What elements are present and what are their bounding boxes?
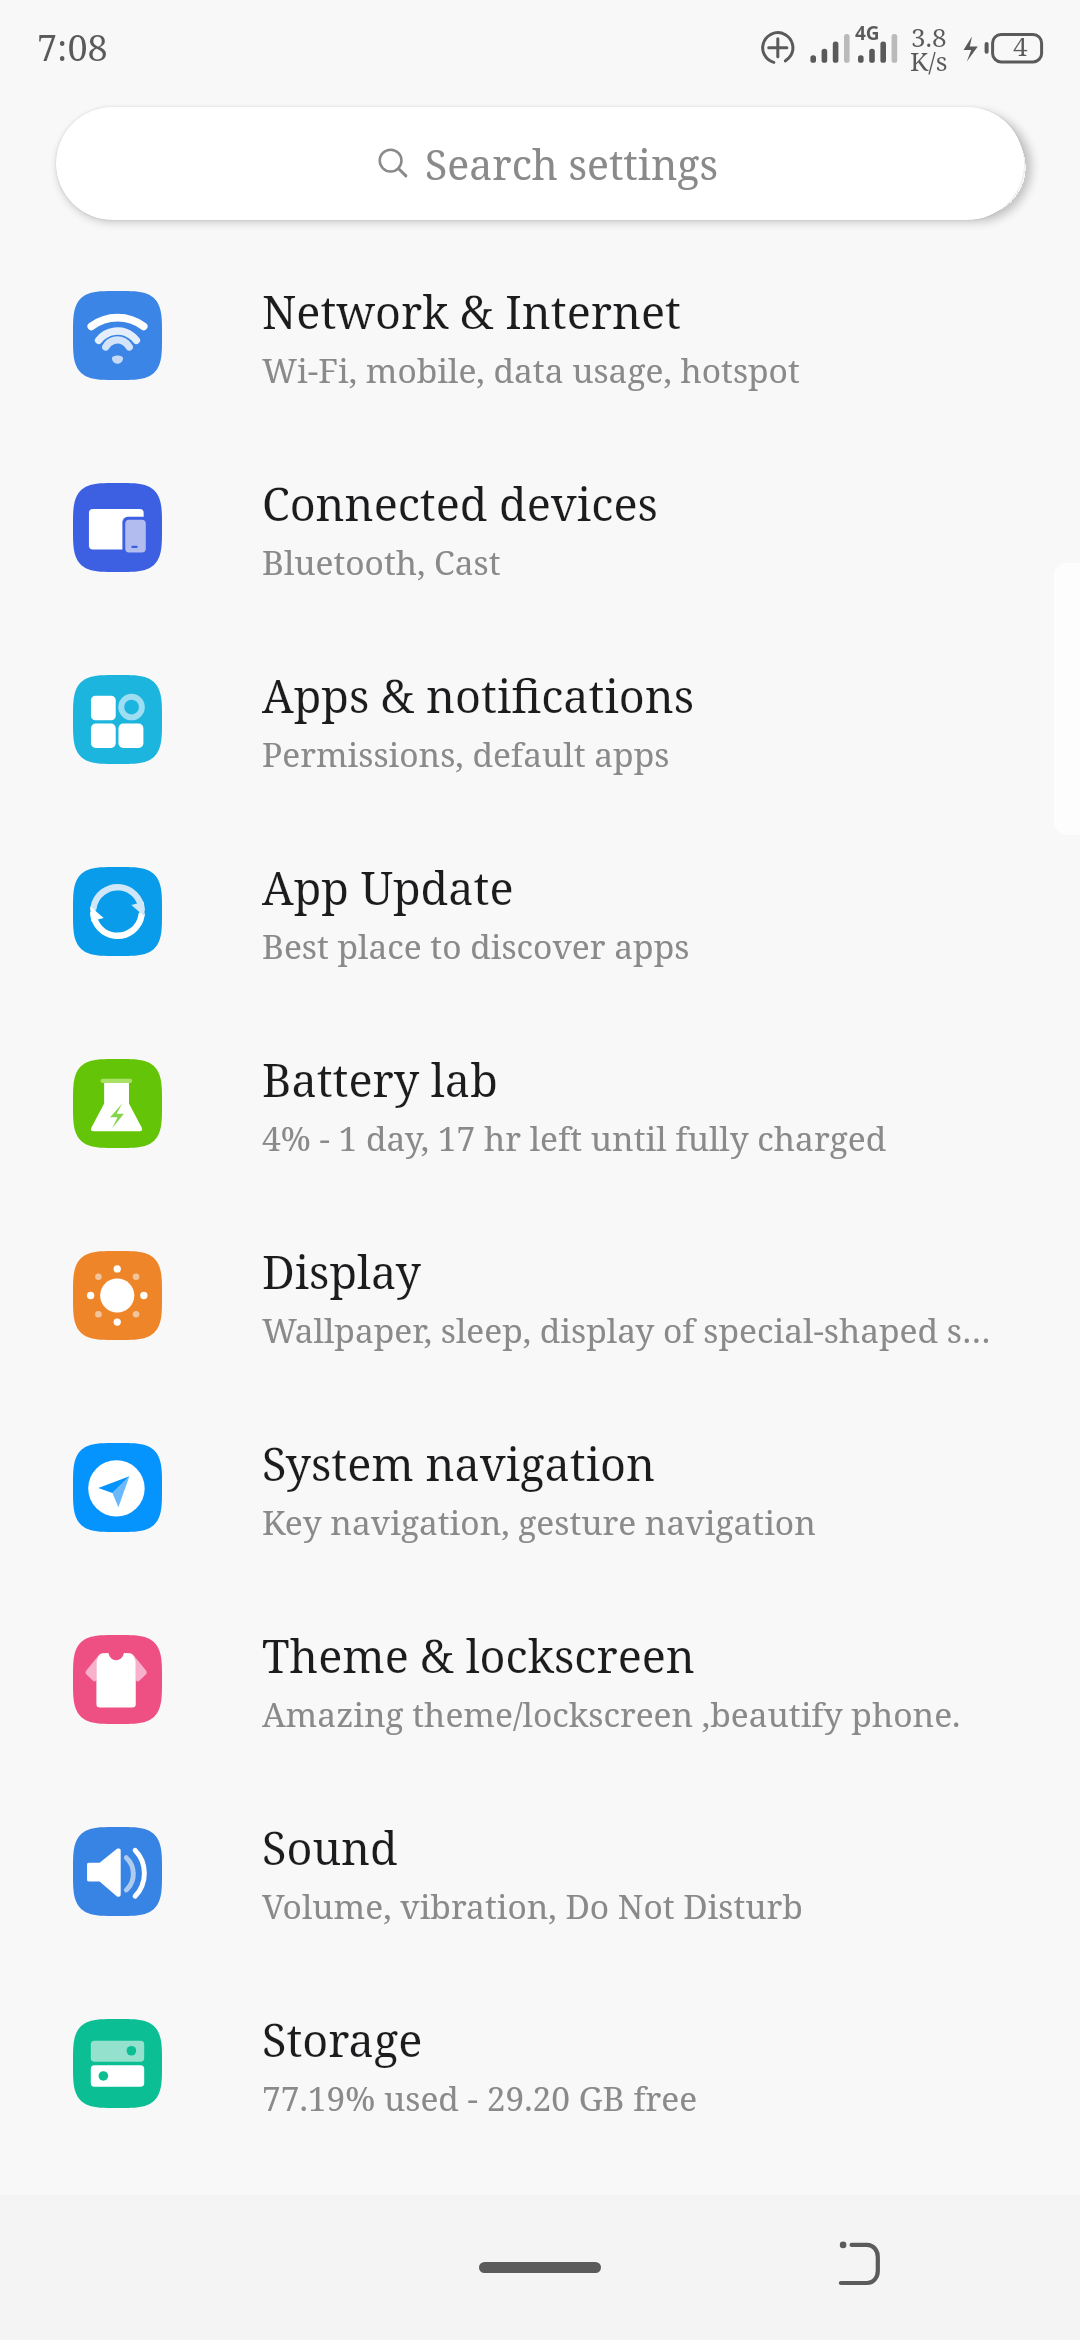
button[interactable]: Sound bbox=[0, 1775, 1080, 1967]
staticText: 4% - 1 day, 17 hr left until fully charg… bbox=[262, 1115, 887, 1161]
button[interactable]: Apps & notifications bbox=[0, 623, 1080, 815]
staticText: Permissions, default apps bbox=[262, 731, 670, 777]
staticText: Apps & notifications bbox=[262, 665, 695, 726]
button[interactable]: Back bbox=[815, 2225, 905, 2310]
staticText: 4 bbox=[1013, 28, 1028, 63]
staticText: Display bbox=[262, 1241, 421, 1302]
staticText: Key navigation, gesture navigation bbox=[262, 1499, 816, 1545]
button[interactable]: Connected devices bbox=[0, 431, 1080, 623]
staticText: 7:08 bbox=[37, 23, 108, 72]
button[interactable]: Battery lab bbox=[0, 1007, 1080, 1199]
button[interactable]: Network & Internet bbox=[0, 239, 1080, 431]
button[interactable]: System navigation bbox=[0, 1391, 1080, 1583]
staticText: Network & Internet bbox=[262, 281, 681, 342]
staticText: 4G bbox=[855, 20, 880, 46]
staticText: Connected devices bbox=[262, 473, 658, 534]
button[interactable]: Home bbox=[455, 2240, 625, 2295]
staticText: Wallpaper, sleep, display of special-sha… bbox=[262, 1307, 991, 1353]
staticText: App Update bbox=[262, 857, 514, 918]
staticText: Theme & lockscreen bbox=[262, 1625, 695, 1686]
staticText: Sound bbox=[262, 1817, 398, 1878]
staticText: Battery lab bbox=[262, 1049, 498, 1110]
staticText: Search settings bbox=[425, 136, 718, 192]
button[interactable]: Display bbox=[0, 1199, 1080, 1391]
button[interactable]: Storage bbox=[0, 1967, 1080, 2159]
button[interactable]: App Update bbox=[0, 815, 1080, 1007]
staticText: Best place to discover apps bbox=[262, 923, 690, 969]
staticText: 3.8 bbox=[911, 19, 947, 54]
staticText: Amazing theme/lockscreen ,beautify phone… bbox=[262, 1691, 961, 1737]
staticText: Bluetooth, Cast bbox=[262, 539, 501, 585]
staticText: System navigation bbox=[262, 1433, 656, 1494]
staticText: 77.19% used - 29.20 GB free bbox=[262, 2075, 698, 2121]
button[interactable]: Search settings bbox=[56, 107, 1024, 220]
staticText: Wi-Fi, mobile, data usage, hotspot bbox=[262, 347, 800, 393]
button[interactable]: Theme & lockscreen bbox=[0, 1583, 1080, 1775]
staticText: K/s bbox=[910, 43, 948, 78]
staticText: Storage bbox=[262, 2009, 423, 2070]
staticText: Volume, vibration, Do Not Disturb bbox=[262, 1883, 803, 1929]
